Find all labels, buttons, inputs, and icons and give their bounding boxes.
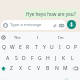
button[interactable]: I bbox=[27, 32, 49, 42]
staticText: G bbox=[38, 55, 42, 62]
other: Camera bbox=[59, 23, 64, 28]
button[interactable]: C bbox=[25, 64, 34, 73]
staticText: Type a message bbox=[10, 22, 42, 28]
button[interactable]: P bbox=[72, 43, 80, 52]
button[interactable]: Shift bbox=[0, 64, 7, 73]
staticText: Z bbox=[10, 65, 13, 72]
button[interactable]: V bbox=[34, 64, 43, 73]
button[interactable]: W bbox=[8, 43, 16, 52]
staticText: E bbox=[19, 44, 22, 51]
button[interactable]: L bbox=[68, 54, 76, 63]
staticText: I bbox=[59, 44, 61, 51]
staticText: J bbox=[55, 55, 57, 62]
staticText: W bbox=[10, 44, 15, 51]
button[interactable]: H bbox=[44, 54, 52, 63]
staticText: T bbox=[35, 44, 38, 51]
button[interactable]: B bbox=[43, 64, 52, 73]
button[interactable]: M bbox=[61, 64, 70, 73]
button[interactable]: T bbox=[32, 43, 40, 52]
staticText: M bbox=[63, 65, 68, 72]
staticText: A bbox=[6, 55, 10, 62]
staticText: V bbox=[37, 65, 41, 72]
button[interactable]: Y bbox=[40, 43, 48, 52]
staticText: I'm bbox=[58, 35, 64, 40]
staticText: The bbox=[14, 35, 21, 40]
button[interactable]: Hye heyo how are you? bbox=[24, 9, 78, 18]
staticText: U bbox=[50, 44, 54, 51]
button[interactable]: I'm bbox=[49, 32, 73, 42]
staticText: D bbox=[22, 55, 26, 62]
staticText: C bbox=[28, 65, 32, 72]
staticText: N bbox=[55, 65, 59, 72]
button[interactable]: Z bbox=[7, 64, 16, 73]
staticText: Hye heyo how are you? bbox=[26, 11, 76, 17]
button[interactable]: J bbox=[52, 54, 60, 63]
button[interactable]: K bbox=[60, 54, 68, 63]
button[interactable]: O bbox=[64, 43, 72, 52]
staticText: Q bbox=[2, 44, 6, 51]
button[interactable]: E bbox=[16, 43, 24, 52]
staticText: P bbox=[74, 44, 78, 51]
button[interactable]: N bbox=[52, 64, 61, 73]
button[interactable]: Q bbox=[0, 43, 8, 52]
staticText: B bbox=[46, 65, 50, 72]
button[interactable]: Type a message bbox=[1, 20, 66, 30]
button[interactable]: D bbox=[20, 54, 28, 63]
button[interactable]: X bbox=[16, 64, 25, 73]
staticText: L bbox=[71, 55, 74, 62]
button[interactable]: G bbox=[36, 54, 44, 63]
staticText: R bbox=[26, 44, 30, 51]
button[interactable]: Settings bbox=[0, 32, 7, 42]
button[interactable]: Backspace bbox=[70, 64, 80, 73]
button[interactable]: I bbox=[56, 43, 64, 52]
staticText: O bbox=[66, 44, 70, 51]
staticText: I bbox=[37, 35, 39, 40]
button[interactable]: Voice message bbox=[67, 20, 76, 29]
button[interactable]: F bbox=[28, 54, 36, 63]
button[interactable]: S bbox=[12, 54, 20, 63]
staticText: S bbox=[15, 55, 18, 62]
staticText: K bbox=[62, 55, 66, 62]
other: Attach bbox=[52, 23, 57, 28]
button[interactable]: R bbox=[24, 43, 32, 52]
staticText: X bbox=[19, 65, 22, 72]
staticText: F bbox=[31, 55, 34, 62]
button[interactable]: The bbox=[7, 32, 27, 42]
staticText: H bbox=[46, 55, 50, 62]
button[interactable]: Enter bbox=[61, 76, 72, 80]
button[interactable]: A bbox=[4, 54, 12, 63]
button[interactable]: U bbox=[48, 43, 56, 52]
staticText: Y bbox=[43, 44, 46, 51]
